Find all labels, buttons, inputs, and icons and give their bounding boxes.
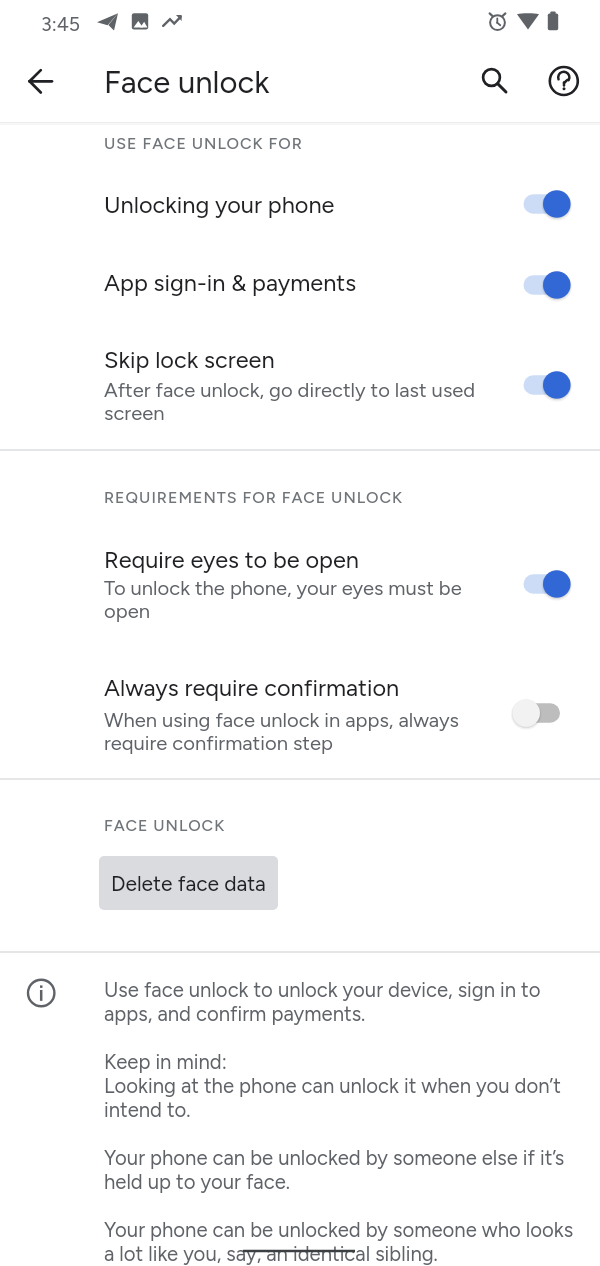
staticText: 3:45 <box>41 12 80 35</box>
button[interactable]: Help <box>539 55 591 107</box>
button[interactable]: App sign-in & payments <box>0 249 600 323</box>
staticText: USE FACE UNLOCK FOR <box>104 134 303 153</box>
staticText: Face unlock <box>104 64 270 101</box>
staticText: Always require confirmation <box>104 674 400 702</box>
button[interactable]: Require eyes to be open <box>0 530 600 640</box>
staticText: Use face unlock to unlock your device, s… <box>104 978 574 1266</box>
staticText: Skip lock screen <box>104 346 275 374</box>
button[interactable]: Delete face data <box>99 856 278 910</box>
staticText: Require eyes to be open <box>104 546 359 574</box>
staticText: When using face unlock in apps, always r… <box>104 708 459 755</box>
button[interactable]: Enabled <box>506 361 578 409</box>
button[interactable]: Disabled <box>506 689 578 737</box>
staticText: Unlocking your phone <box>104 191 335 219</box>
staticText: App sign-in & payments <box>104 269 357 297</box>
button[interactable]: Enabled <box>506 180 578 228</box>
button[interactable]: Search <box>466 55 518 107</box>
staticText: Delete face data <box>111 871 266 896</box>
button[interactable]: Always require confirmation <box>0 658 600 768</box>
button[interactable]: Enabled <box>506 560 578 608</box>
button[interactable]: Navigate up <box>14 55 66 107</box>
staticText: FACE UNLOCK <box>104 816 226 835</box>
staticText: After face unlock, go directly to last u… <box>104 378 476 425</box>
button[interactable]: Skip lock screen <box>0 330 600 440</box>
button[interactable]: Unlocking your phone <box>0 169 600 243</box>
staticText: REQUIREMENTS FOR FACE UNLOCK <box>104 488 404 507</box>
staticText: To unlock the phone, your eyes must be o… <box>104 576 462 623</box>
button[interactable]: Enabled <box>506 261 578 309</box>
